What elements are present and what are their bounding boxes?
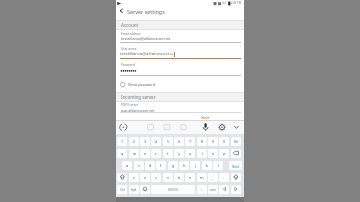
button[interactable]: 2: [129, 137, 139, 146]
button[interactable]: 9: [208, 137, 218, 146]
button[interactable]: [231, 149, 241, 158]
staticText: o: [212, 151, 215, 156]
button[interactable]: ENG(US): [151, 185, 195, 194]
staticText: User name: [121, 47, 137, 51]
button[interactable]: [140, 185, 150, 194]
button[interactable]: 6: [174, 137, 184, 146]
staticText: Email address: [121, 32, 141, 36]
button[interactable]: [119, 122, 129, 132]
staticText: ,: [212, 175, 214, 180]
staticText: 2: [133, 139, 136, 144]
staticText: ENG(US): [168, 188, 179, 192]
button[interactable]: w: [129, 149, 139, 158]
staticText: Del: [234, 140, 239, 144]
staticText: Show password: [128, 82, 156, 87]
staticText: p: [223, 151, 226, 156]
button[interactable]: s: [134, 161, 144, 170]
staticText: y: [178, 151, 180, 156]
staticText: r: [155, 151, 157, 156]
button[interactable]: Next: [193, 114, 217, 121]
staticText: com: [210, 188, 216, 192]
button[interactable]: u: [185, 149, 195, 158]
staticText: w: [133, 151, 136, 156]
staticText: testallianca@allianoscort.u: [120, 51, 173, 57]
button[interactable]: d: [145, 161, 155, 170]
button[interactable]: m: [197, 173, 207, 182]
button[interactable]: [117, 173, 127, 182]
button[interactable]: j: [190, 161, 200, 170]
staticText: Incoming server: [121, 94, 156, 100]
button[interactable]: f: [156, 161, 166, 170]
button[interactable]: g: [168, 161, 178, 170]
button[interactable]: com: [208, 185, 218, 194]
button[interactable]: i: [197, 149, 207, 158]
button[interactable]: Del: [231, 137, 241, 146]
staticText: pop-allianoscom.net: [121, 108, 155, 113]
button[interactable]: :: [197, 185, 207, 194]
button[interactable]: k: [202, 161, 212, 170]
staticText: z: [133, 175, 135, 180]
button[interactable]: h: [179, 161, 189, 170]
button[interactable]: n: [185, 173, 195, 182]
button[interactable]: v: [163, 173, 173, 182]
button[interactable]: e: [140, 149, 150, 158]
staticText: h: [183, 163, 186, 168]
button[interactable]: 0: [219, 137, 229, 146]
staticText: Account: [121, 22, 139, 28]
button[interactable]: .: [219, 173, 229, 182]
staticText: Password: [121, 63, 135, 67]
staticText: e: [144, 151, 147, 156]
staticText: 2:46 PM: [231, 1, 242, 5]
staticText: 3: [144, 139, 147, 144]
staticText: c: [155, 175, 157, 180]
button[interactable]: x: [140, 173, 150, 182]
button[interactable]: 1: [117, 137, 127, 146]
staticText: 4: [155, 139, 158, 144]
staticText: j: [195, 163, 196, 168]
staticText: 7: [189, 139, 192, 144]
button[interactable]: [219, 185, 229, 194]
button[interactable]: [231, 122, 241, 132]
button[interactable]: Next: [229, 161, 242, 170]
button[interactable]: [201, 122, 211, 132]
button[interactable]: [231, 185, 241, 194]
staticText: x: [144, 175, 147, 180]
button[interactable]: c: [151, 173, 161, 182]
button[interactable]: Sym: [129, 185, 139, 194]
button[interactable]: Ctrl: [117, 185, 127, 194]
staticText: 8: [201, 139, 204, 144]
staticText: l: [218, 163, 219, 168]
button[interactable]: r: [151, 149, 161, 158]
button[interactable]: a: [122, 161, 132, 170]
button[interactable]: z: [129, 173, 139, 182]
button[interactable]: [116, 7, 244, 21]
staticText: f: [160, 163, 162, 168]
button[interactable]: q: [117, 149, 127, 158]
staticText: 1: [121, 139, 124, 144]
staticText: m: [200, 175, 204, 180]
button[interactable]: p: [219, 149, 229, 158]
button[interactable]: [231, 173, 241, 182]
button[interactable]: 5: [163, 137, 173, 146]
staticText: v: [167, 175, 169, 180]
button[interactable]: b: [174, 173, 184, 182]
button[interactable]: o: [208, 149, 218, 158]
button[interactable]: [217, 122, 227, 132]
staticText: testallianca@allianoscom.mt: [121, 36, 171, 41]
button[interactable]: 3: [140, 137, 150, 146]
staticText: 6: [178, 139, 181, 144]
staticText: .: [223, 175, 225, 180]
staticText: q: [121, 151, 124, 156]
staticText: b: [178, 175, 181, 180]
button[interactable]: 4: [151, 137, 161, 146]
staticText: Sym: [131, 188, 137, 192]
staticText: s: [138, 163, 140, 168]
staticText: 0: [223, 139, 226, 144]
button[interactable]: t: [163, 149, 173, 158]
button[interactable]: 8: [197, 137, 207, 146]
button[interactable]: [118, 80, 178, 89]
button[interactable]: y: [174, 149, 184, 158]
button[interactable]: 7: [185, 137, 195, 146]
button[interactable]: ,: [208, 173, 218, 182]
button[interactable]: l: [213, 161, 223, 170]
